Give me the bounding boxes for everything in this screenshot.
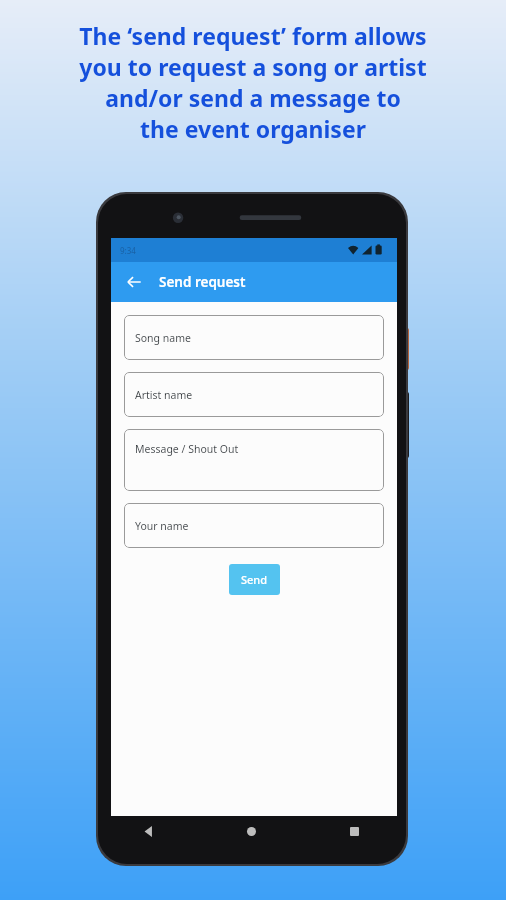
staticText: Send request (159, 273, 246, 291)
staticText: you to request a song or artist (79, 51, 427, 82)
button[interactable]: Back (119, 267, 149, 297)
button[interactable]: Artist name (124, 372, 384, 417)
button[interactable]: Back (98, 816, 200, 846)
staticText: 9:34 (120, 245, 136, 256)
button[interactable]: Song name (124, 315, 384, 360)
staticText: Artist name (135, 388, 193, 402)
staticText: Message / Shout Out (135, 442, 239, 456)
staticText: Send (241, 572, 268, 587)
button[interactable]: Send (229, 564, 280, 595)
button[interactable]: Recents (303, 816, 406, 846)
staticText: Your name (135, 519, 189, 533)
button[interactable]: Message / Shout Out (124, 429, 384, 491)
button[interactable]: Home (200, 816, 303, 846)
button[interactable]: Your name (124, 503, 384, 548)
staticText: Song name (135, 331, 191, 345)
staticText: the event organiser (140, 113, 366, 144)
staticText: The ‘send request’ form allows (79, 20, 427, 51)
staticText: and/or send a message to (105, 82, 401, 113)
